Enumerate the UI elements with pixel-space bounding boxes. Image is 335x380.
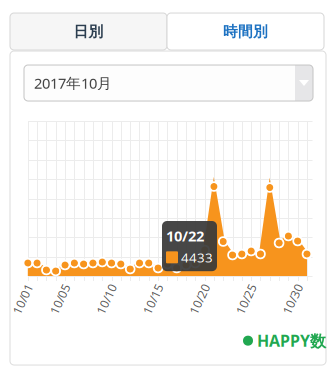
staticText: 日別 [73, 22, 103, 40]
staticText: 10/25 [230, 291, 262, 307]
staticText: 4433 [181, 248, 213, 266]
button[interactable]: 時間別 [167, 13, 324, 50]
button[interactable]: 日別 [10, 13, 167, 50]
staticText: 10/20 [184, 291, 216, 307]
staticText: HAPPY数 [257, 330, 326, 351]
staticText: 10/15 [137, 291, 169, 307]
staticText: 2017年10月 [34, 73, 112, 93]
staticText: 10/01 [7, 291, 39, 307]
staticText: 時間別 [223, 22, 268, 40]
staticText: 10/30 [277, 291, 309, 307]
staticText: 10/10 [91, 291, 123, 307]
staticText: 10/05 [44, 291, 76, 307]
staticText: 10/22 [166, 226, 204, 245]
button[interactable]: 2017年10月 [24, 65, 313, 101]
